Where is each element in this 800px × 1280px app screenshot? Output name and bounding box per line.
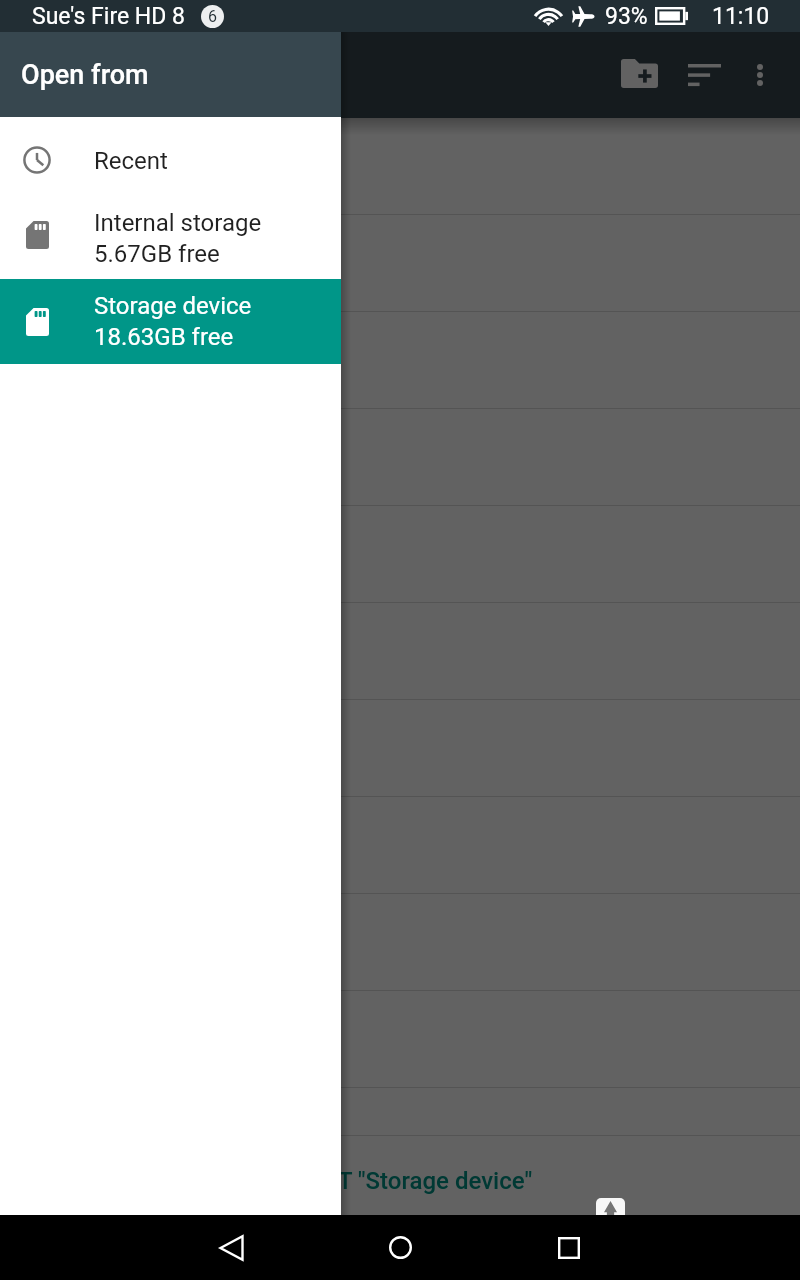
staticText: 93% — [605, 3, 648, 30]
button[interactable]: New folder — [603, 42, 676, 108]
button[interactable] — [0, 991, 800, 1088]
button[interactable]: More options — [732, 47, 788, 103]
staticText: Internal storage — [94, 209, 262, 237]
button[interactable] — [0, 797, 800, 894]
button[interactable]: Scroll to top — [596, 1198, 625, 1227]
staticText: 18.63GB free — [94, 323, 234, 351]
staticText: Sue's Fire HD 8 — [32, 3, 185, 30]
staticText: SELECT "Storage device" — [268, 1167, 533, 1195]
button[interactable] — [0, 603, 800, 700]
staticText: Storage device — [94, 292, 252, 320]
button[interactable]: Back — [197, 1215, 265, 1280]
button[interactable] — [0, 409, 800, 506]
staticText: Recent — [94, 147, 168, 175]
button[interactable] — [0, 312, 800, 409]
button[interactable] — [0, 894, 800, 991]
button[interactable]: Sort — [676, 47, 732, 103]
button[interactable] — [0, 118, 800, 215]
button[interactable]: Recent — [0, 125, 341, 197]
button[interactable] — [0, 215, 800, 312]
button[interactable] — [0, 700, 800, 797]
staticText: 11:10 — [712, 3, 770, 30]
button[interactable]: Home — [366, 1215, 434, 1280]
staticText: Open from — [21, 59, 149, 91]
button[interactable]: SELECT "Storage device" — [0, 1136, 800, 1215]
staticText: 6 — [208, 7, 217, 26]
button[interactable]: Internal storage — [0, 197, 341, 279]
button[interactable]: Storage device — [0, 279, 341, 364]
button[interactable]: Recents — [535, 1215, 603, 1280]
button[interactable] — [0, 506, 800, 603]
staticText: 5.67GB free — [94, 240, 220, 268]
button[interactable] — [0, 1088, 800, 1136]
